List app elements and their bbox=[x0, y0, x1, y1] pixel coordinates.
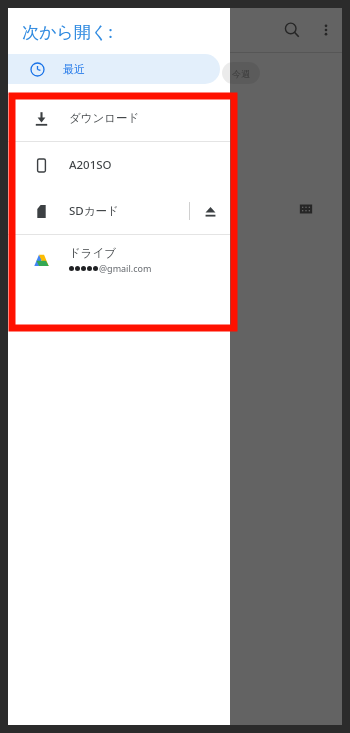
button[interactable]: SDカード bbox=[8, 188, 230, 234]
staticText: ダウンロード bbox=[69, 111, 140, 125]
staticText: 次から開く: bbox=[22, 20, 113, 43]
button[interactable]: ドライブ bbox=[8, 235, 230, 285]
staticText: 今週 bbox=[232, 68, 250, 79]
button[interactable]: More options bbox=[310, 14, 342, 46]
button[interactable]: ダウンロード bbox=[8, 95, 230, 141]
staticText: SDカード bbox=[69, 203, 119, 219]
button[interactable]: Close drawer bbox=[230, 8, 342, 725]
staticText: A201SO bbox=[69, 157, 112, 173]
staticText: @gmail.com bbox=[99, 262, 152, 274]
button[interactable]: A201SO bbox=[8, 142, 230, 188]
button[interactable]: Grid view bbox=[295, 198, 317, 220]
button[interactable]: 最近 bbox=[8, 54, 220, 84]
button[interactable]: Search bbox=[274, 12, 310, 48]
staticText: 最近 bbox=[63, 62, 85, 76]
staticText: ドライブ bbox=[69, 246, 117, 260]
button[interactable]: Eject SD card bbox=[190, 188, 230, 234]
button[interactable]: 今週 bbox=[222, 62, 260, 84]
